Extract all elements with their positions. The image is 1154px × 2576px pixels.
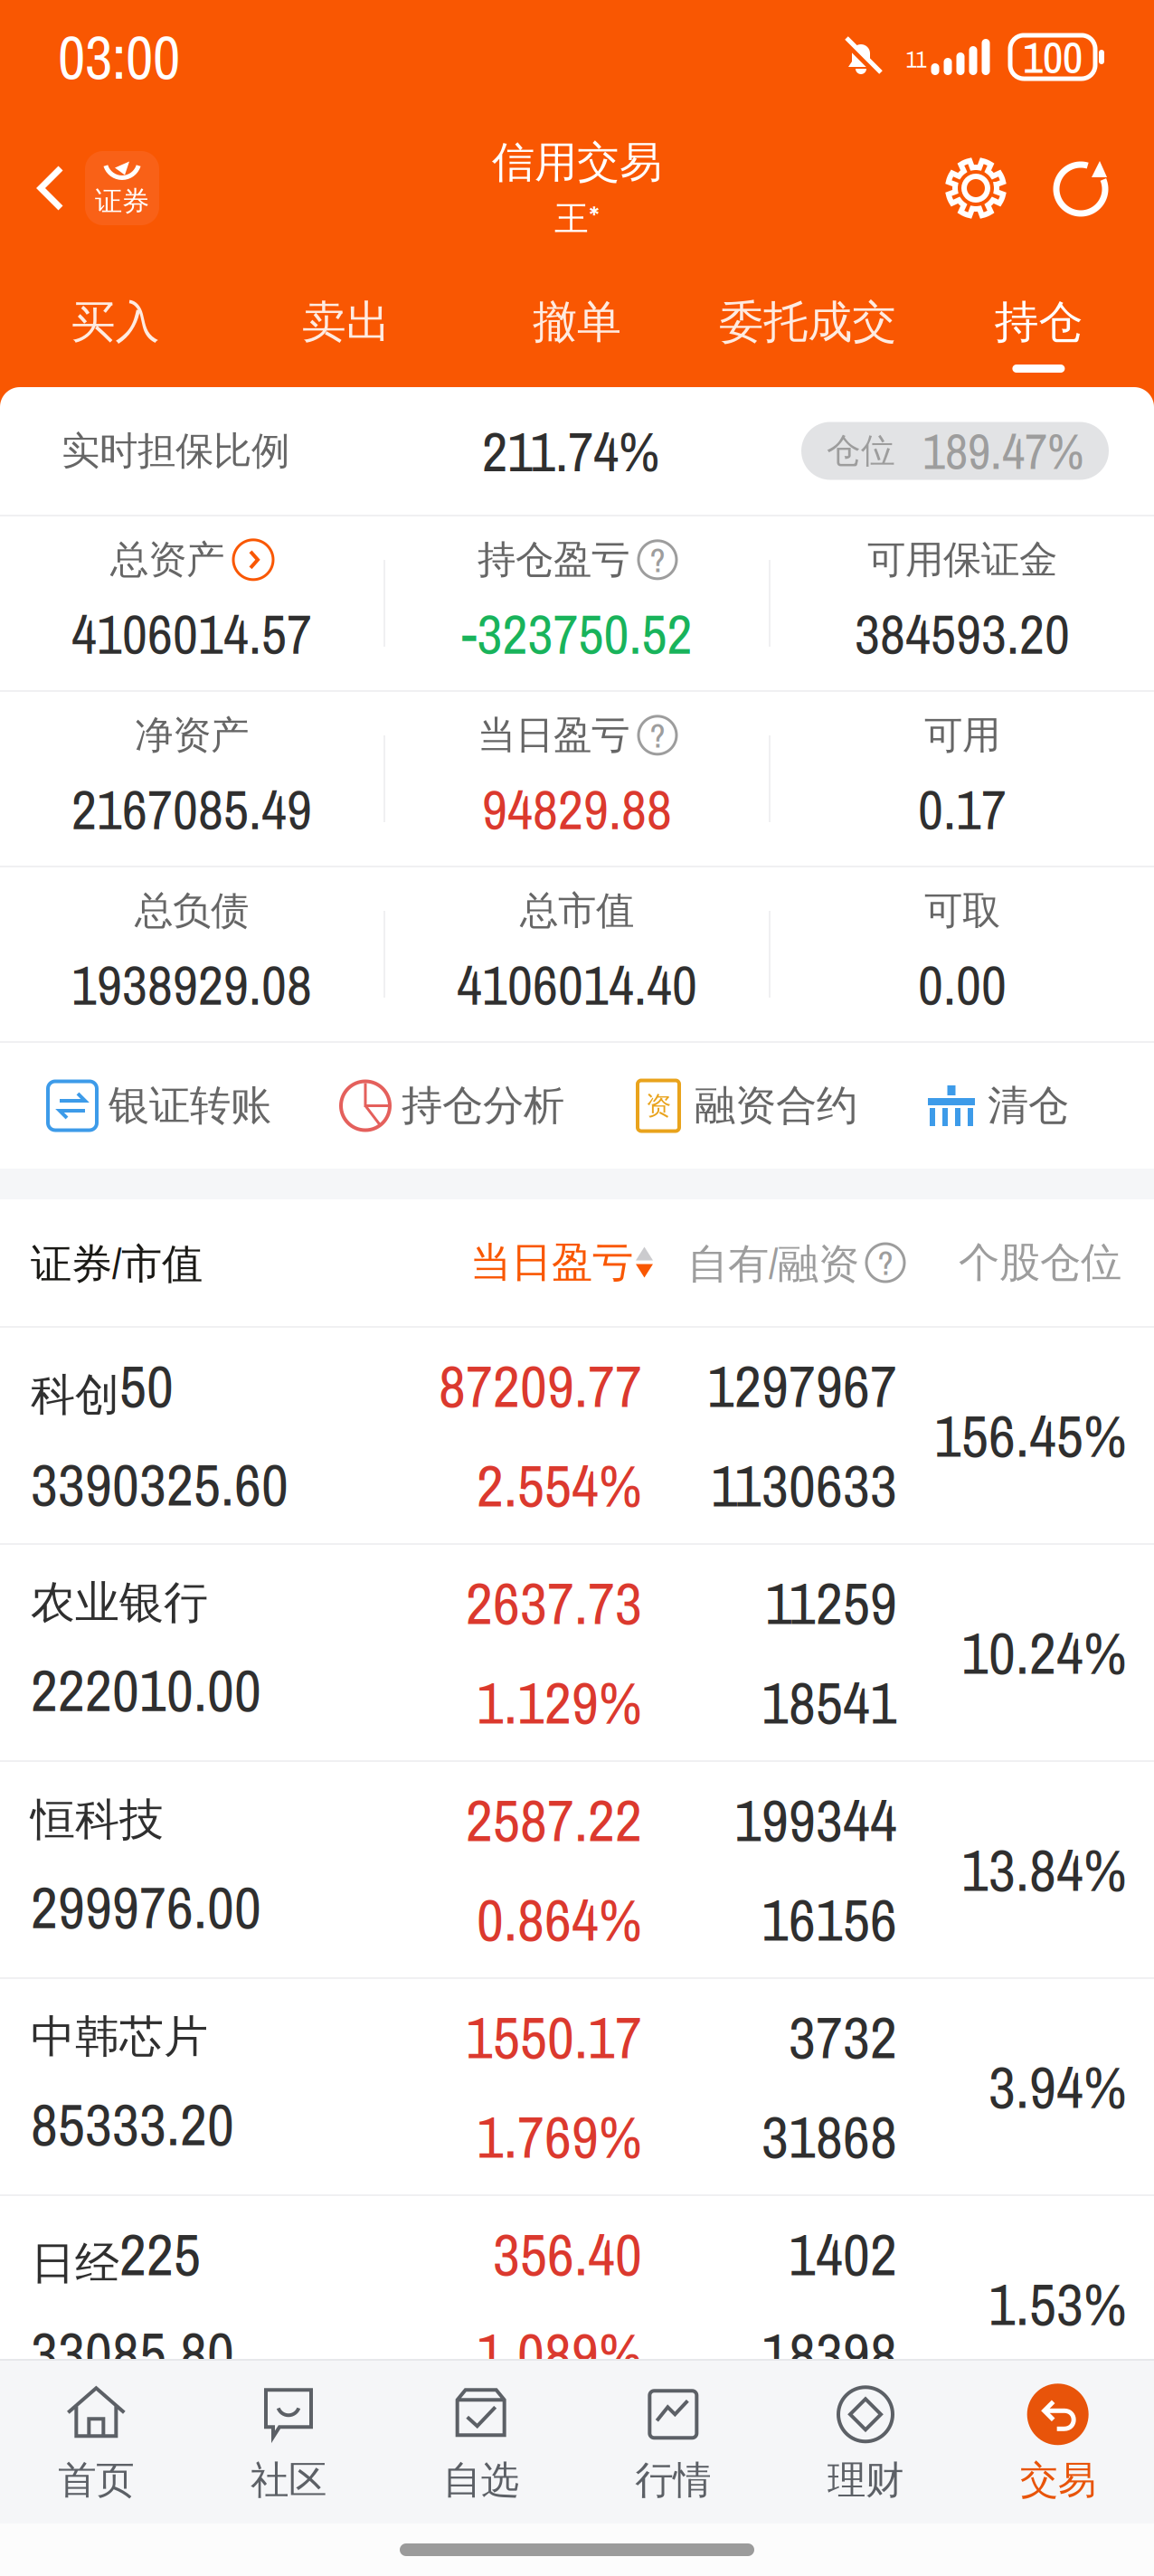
staticText: 18398 [761, 2314, 897, 2393]
staticText: 100 [1023, 27, 1083, 87]
staticText: 当日盈亏 [470, 1237, 633, 1288]
staticText: 自有/融资 [687, 1235, 859, 1290]
staticText: 王* [554, 195, 600, 241]
staticText: 日经225 [31, 2215, 201, 2293]
staticText: 可用 [924, 711, 1000, 759]
button[interactable]: 首页 [0, 2361, 192, 2524]
staticText: 社区 [251, 2456, 326, 2504]
button[interactable]: 资 [633, 1080, 857, 1132]
button[interactable]: 设置 [933, 146, 1018, 231]
staticText: 13.84% [961, 1830, 1127, 1909]
button[interactable]: 交易 [962, 2361, 1154, 2524]
staticText: 交易 [1020, 2456, 1096, 2504]
staticText: 384593.20 [855, 597, 1070, 671]
button[interactable]: 银证转账 [47, 1080, 271, 1132]
staticText: 4106014.57 [71, 597, 312, 671]
staticText: 当日盈亏 [478, 711, 629, 759]
staticText: 1938929.08 [71, 948, 312, 1022]
staticText: 证券 [95, 184, 149, 218]
staticText: 1.129% [477, 1662, 642, 1742]
staticText: 持仓分析 [402, 1080, 564, 1132]
staticText: ? [878, 1240, 893, 1286]
staticText: 31868 [761, 2097, 897, 2176]
button[interactable]: 刷新 [1038, 146, 1123, 231]
button[interactable]: 持仓分析 [340, 1080, 564, 1132]
staticText: 1550.17 [466, 1997, 642, 2077]
staticText: 1.53% [988, 2264, 1127, 2344]
button[interactable]: 买入 [0, 262, 231, 387]
button[interactable]: 社区 [192, 2361, 385, 2524]
staticText: 理财 [828, 2456, 903, 2504]
button[interactable]: 卖出 [231, 262, 462, 387]
staticText: ? [650, 712, 665, 758]
staticText: 85333.20 [31, 2084, 234, 2164]
staticText: 净资产 [135, 711, 249, 759]
button[interactable]: 返回 [0, 120, 170, 256]
staticText: 恒科技 [31, 1793, 164, 1847]
staticText: 总资产 [110, 536, 224, 584]
staticText: 199344 [734, 1780, 897, 1860]
staticText: 农业银行 [31, 1576, 208, 1630]
staticText: 1402 [789, 2214, 897, 2294]
staticText: 中韩芯片 [31, 2010, 208, 2064]
button[interactable]: 行情 [577, 2361, 769, 2524]
staticText: 可取 [924, 886, 1000, 935]
button[interactable]: 科创50 [0, 1328, 1154, 1543]
staticText: 3.94% [988, 2047, 1127, 2126]
staticText: 1.769% [477, 2097, 642, 2176]
button[interactable]: 撤单 [462, 262, 692, 387]
button[interactable]: 理财 [769, 2361, 962, 2524]
button[interactable]: 清仓 [926, 1080, 1069, 1132]
staticText: 自选 [443, 2456, 519, 2504]
staticText: 94829.88 [482, 772, 672, 847]
staticText: 2.554% [477, 1445, 642, 1525]
staticText: 清仓 [988, 1080, 1069, 1132]
button[interactable]: 自选 [385, 2361, 577, 2524]
button[interactable]: 持仓 [923, 262, 1154, 387]
staticText: 实时担保比例 [61, 427, 289, 475]
staticText: 银证转账 [109, 1080, 271, 1132]
staticText: -323750.52 [462, 597, 692, 671]
staticText: 10.24% [961, 1613, 1127, 1692]
staticText: 1130633 [711, 1445, 897, 1525]
staticText: 0.864% [477, 1880, 642, 1959]
button[interactable]: 日经225 [0, 2196, 1154, 2411]
staticText: 18541 [761, 1662, 897, 1742]
staticText: 总负债 [135, 886, 249, 935]
staticText: 证券/市值 [31, 1236, 203, 1290]
staticText: 持仓盈亏 [478, 536, 629, 584]
staticText: 03:00 [58, 16, 180, 97]
staticText: 个股仓位 [959, 1237, 1121, 1288]
button[interactable]: 当日盈亏 [421, 1237, 653, 1288]
staticText: 299976.00 [31, 1867, 261, 1947]
staticText: ? [650, 537, 665, 583]
staticText: 0.17 [918, 772, 1007, 847]
staticText: 融资合约 [695, 1080, 857, 1132]
staticText: 撤单 [533, 294, 621, 350]
staticText: 0.00 [918, 948, 1007, 1022]
staticText: 222010.00 [31, 1650, 261, 1729]
staticText: 1297967 [707, 1346, 897, 1425]
staticText: 持仓 [994, 294, 1083, 350]
staticText: 资 [646, 1090, 671, 1122]
staticText: 信用交易 [492, 136, 662, 189]
staticText: 356.40 [493, 2214, 642, 2294]
button[interactable]: 农业银行 [0, 1545, 1154, 1760]
staticText: 11259 [765, 1563, 897, 1643]
staticText: 3732 [789, 1997, 897, 2077]
button[interactable]: 恒科技 [0, 1762, 1154, 1977]
staticText: 189.47% [922, 417, 1083, 485]
staticText: 4106014.40 [457, 948, 697, 1022]
button[interactable]: 委托成交 [692, 262, 923, 387]
staticText: 11 [906, 43, 927, 75]
staticText: 156.45% [934, 1396, 1127, 1475]
staticText: 仓位 [827, 429, 895, 472]
staticText: 科创50 [31, 1347, 174, 1424]
staticText: 可用保证金 [867, 536, 1057, 584]
staticText: 1.089% [477, 2314, 642, 2393]
staticText: 2167085.49 [71, 772, 312, 847]
staticText: 33085.80 [31, 2313, 234, 2392]
staticText: 211.74% [482, 413, 659, 489]
button[interactable]: 中韩芯片 [0, 1979, 1154, 2194]
staticText: 买入 [71, 294, 160, 350]
